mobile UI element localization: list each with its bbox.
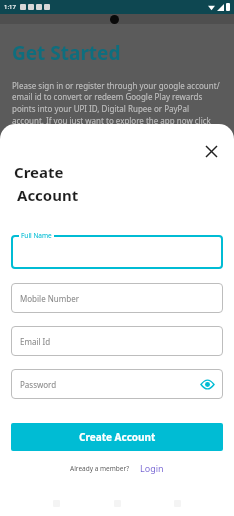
button[interactable]: Email Id <box>11 326 223 356</box>
button[interactable]: Mobile Number <box>11 283 223 313</box>
button[interactable]: Password <box>11 369 223 399</box>
button[interactable]: Show password <box>199 376 215 392</box>
staticText: Create Account <box>79 430 156 444</box>
staticText: Email Id <box>20 336 51 347</box>
staticText: Login <box>140 462 164 474</box>
button[interactable]: Login <box>140 462 164 474</box>
staticText: Create <box>14 162 64 182</box>
staticText: Please sign in or register through your … <box>12 80 222 139</box>
button[interactable]: Close <box>200 140 222 162</box>
staticText: Already a member? <box>70 464 130 473</box>
staticText: Account <box>17 185 79 205</box>
button[interactable]: Create Account <box>11 423 223 451</box>
button[interactable]: Full Name <box>11 235 223 269</box>
staticText: 1:17 <box>4 3 16 11</box>
staticText: Get Started <box>12 40 121 66</box>
staticText: Password <box>20 379 57 390</box>
staticText: Mobile Number <box>20 293 79 304</box>
staticText: Full Name <box>21 231 52 240</box>
